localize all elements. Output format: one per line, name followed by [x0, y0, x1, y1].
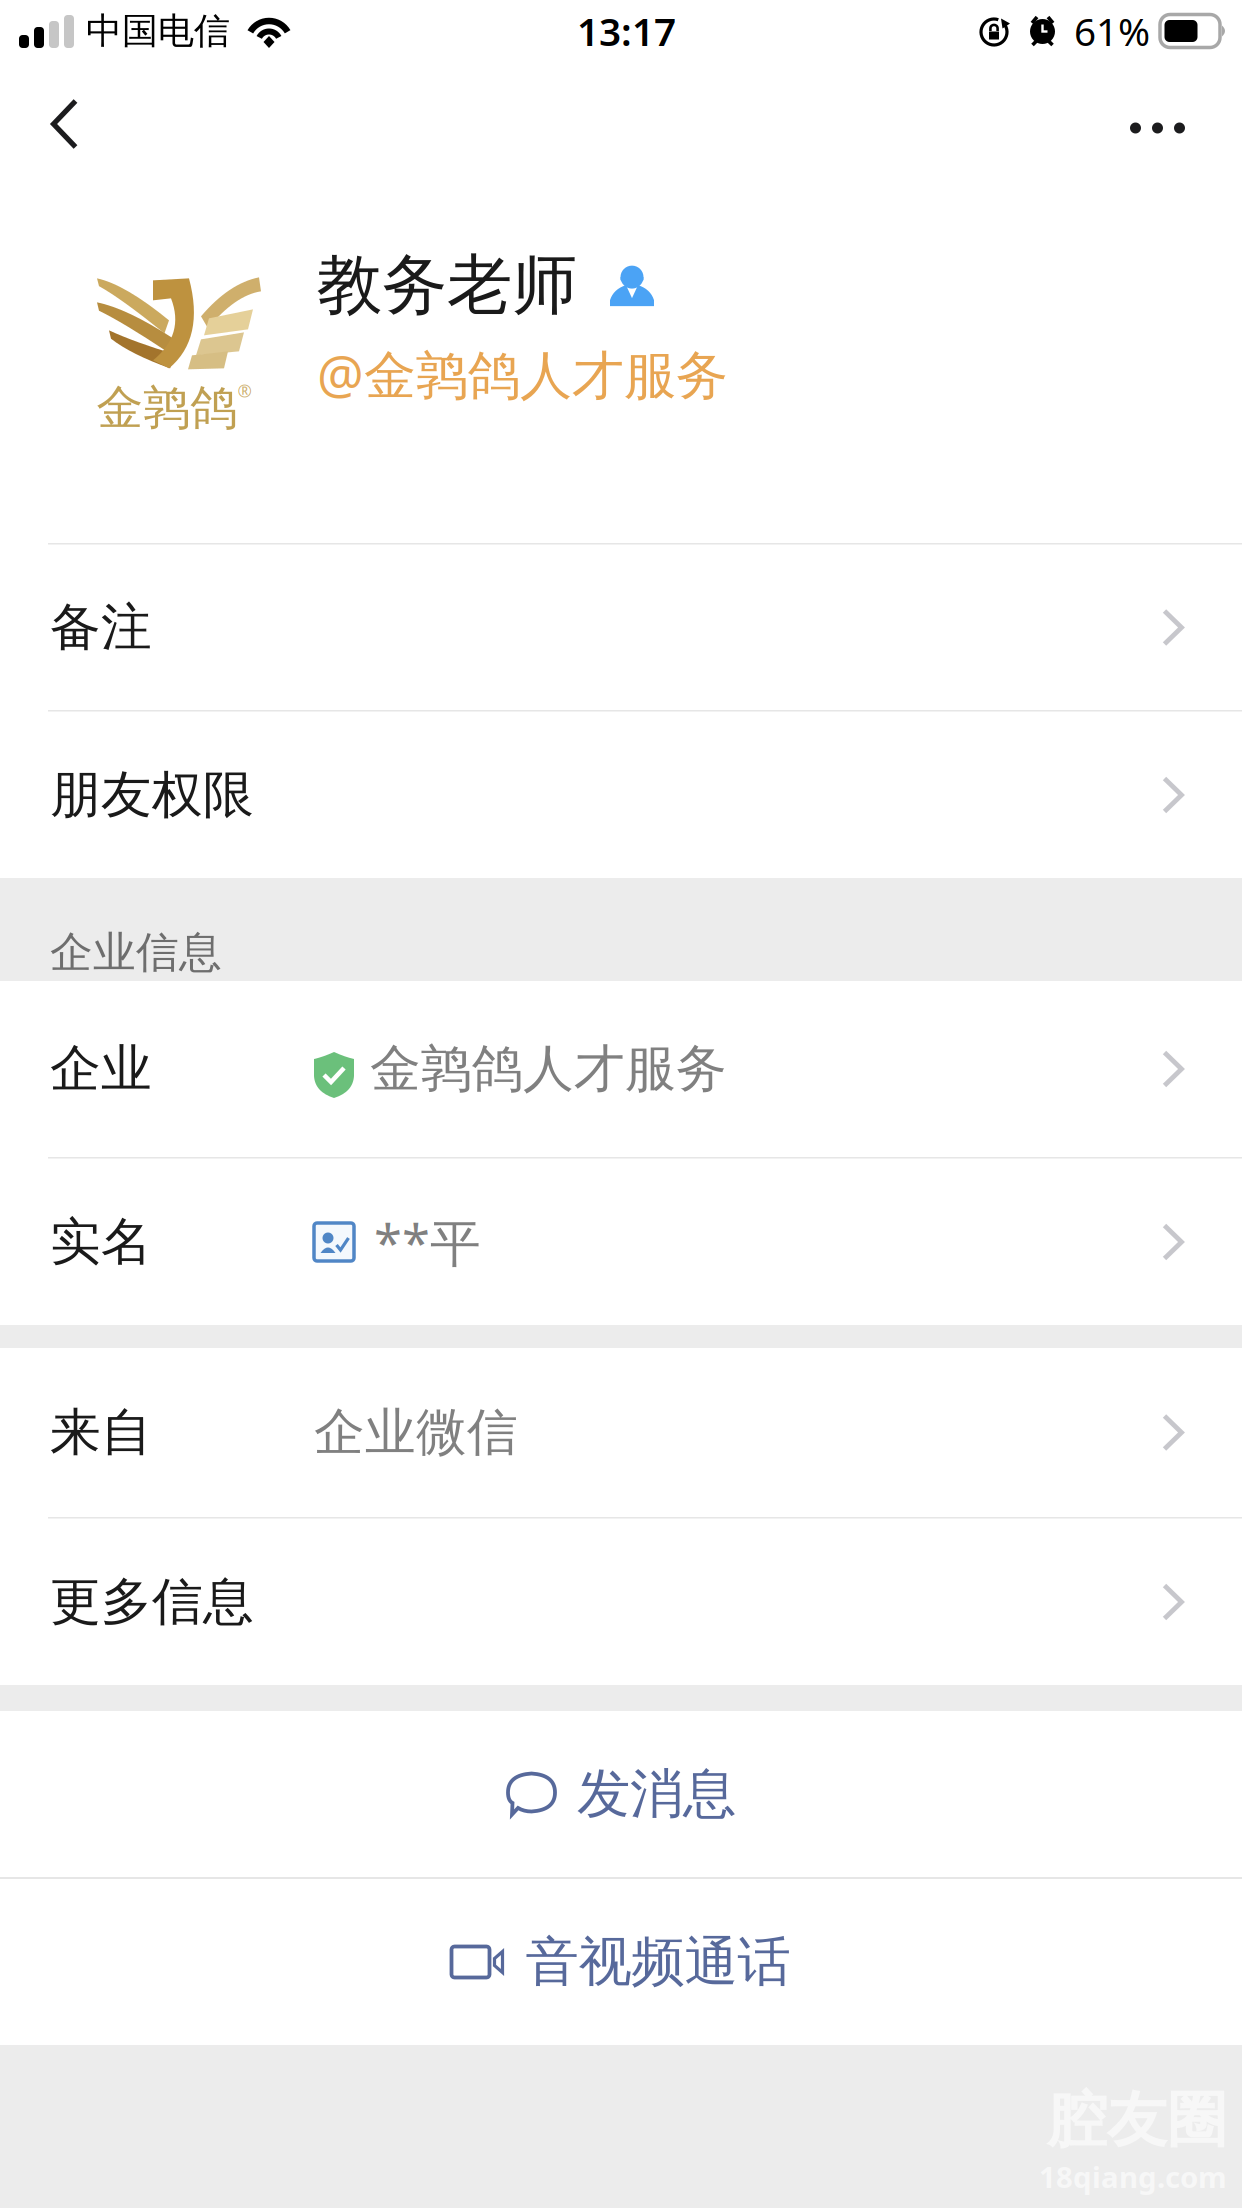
staticText: 61% [1074, 5, 1150, 57]
button[interactable]: 朋友权限 [0, 712, 1242, 878]
staticText: 企业信息 [50, 926, 222, 979]
staticText: 来自 [50, 1401, 152, 1464]
button[interactable]: More [1086, 66, 1242, 190]
staticText: 中国电信 [86, 9, 230, 53]
staticText: 金鹑鸽 [96, 379, 237, 437]
staticText: 朋友权限 [50, 764, 254, 826]
button[interactable]: 实名 [0, 1159, 1242, 1325]
button[interactable]: Back [0, 66, 122, 190]
staticText: 腔友圈 [1047, 2083, 1227, 2157]
staticText: 备注 [50, 596, 152, 659]
staticText: 企业微信 [314, 1401, 518, 1464]
staticText: 更多信息 [50, 1571, 254, 1633]
staticText: 金鹑鸽人才服务 [370, 1038, 727, 1100]
staticText: 13:17 [577, 5, 676, 57]
staticText: 实名 [50, 1211, 152, 1273]
button[interactable]: 发消息 [0, 1711, 1242, 1877]
button[interactable]: 备注 [0, 545, 1242, 710]
staticText: 发消息 [577, 1761, 736, 1827]
staticText: **平 [374, 1208, 481, 1276]
staticText: 教务老师 [317, 245, 577, 325]
button[interactable]: 音视频通话 [0, 1879, 1242, 2045]
button[interactable]: 企业 [0, 981, 1242, 1157]
button[interactable]: 更多信息 [0, 1519, 1242, 1685]
button[interactable]: 来自 [0, 1348, 1242, 1517]
staticText: ® [237, 379, 251, 402]
staticText: @金鹑鸽人才服务 [317, 339, 728, 408]
staticText: 企业 [50, 1038, 152, 1100]
staticText: 音视频通话 [525, 1929, 790, 1995]
staticText: 18qiang.com [1039, 2157, 1227, 2196]
